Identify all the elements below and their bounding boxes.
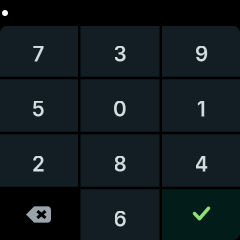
button[interactable]: 6 — [80, 189, 159, 240]
button[interactable]: 0 — [80, 79, 159, 132]
staticText: 7 — [32, 41, 44, 66]
button[interactable]: Confirm — [162, 189, 240, 240]
staticText: 9 — [195, 41, 208, 66]
button[interactable]: 3 — [80, 24, 159, 77]
staticText: 0 — [113, 96, 127, 121]
staticText: 5 — [32, 96, 45, 121]
button[interactable]: Delete — [0, 189, 78, 240]
button[interactable]: 8 — [80, 134, 159, 187]
staticText: 8 — [113, 151, 126, 176]
button[interactable]: 4 — [162, 134, 240, 187]
button[interactable]: 7 — [0, 24, 78, 77]
staticText: 3 — [113, 41, 126, 66]
staticText: 4 — [194, 151, 208, 176]
button[interactable]: 2 — [0, 134, 78, 187]
button[interactable]: 1 — [162, 79, 240, 132]
staticText: 1 — [197, 96, 206, 121]
button[interactable]: 5 — [0, 79, 78, 132]
staticText: 6 — [113, 206, 126, 231]
staticText: 2 — [32, 151, 45, 176]
button[interactable]: 9 — [162, 24, 240, 77]
